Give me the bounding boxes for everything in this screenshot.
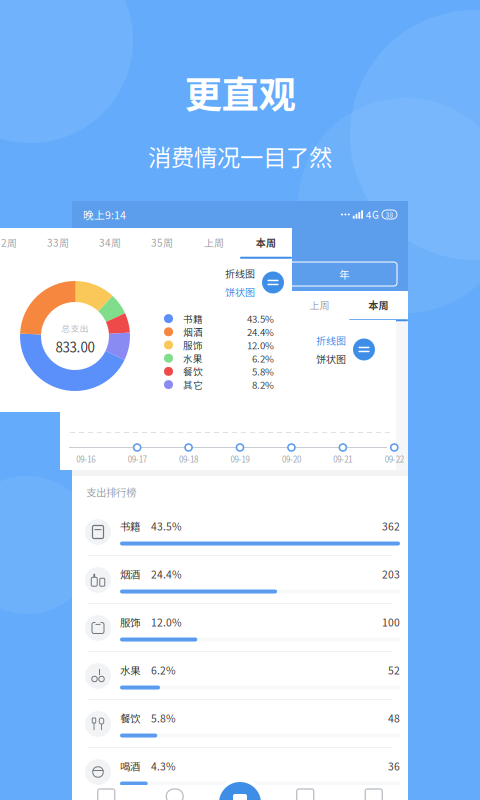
- staticText: 12.0%: [151, 614, 182, 630]
- staticText: 43.5%: [151, 518, 182, 534]
- staticText: 09-22: [385, 453, 404, 465]
- staticText: 烟酒: [183, 325, 203, 339]
- button[interactable]: 喝酒: [72, 748, 408, 796]
- staticText: 更直观: [184, 65, 295, 119]
- staticText: 203: [382, 566, 400, 582]
- staticText: 折线图: [316, 333, 346, 347]
- staticText: 总支出: [61, 322, 88, 334]
- staticText: 33周: [47, 235, 69, 250]
- staticText: 年: [339, 266, 350, 282]
- button[interactable]: 烟酒: [72, 556, 408, 604]
- staticText: 水果: [120, 662, 140, 678]
- staticText: 5.8%: [252, 364, 274, 378]
- staticText: 100: [382, 614, 400, 630]
- staticText: 52: [388, 662, 400, 678]
- button[interactable]: 月: [188, 262, 292, 286]
- button[interactable]: 周: [83, 262, 188, 286]
- button[interactable]: 上周: [188, 228, 240, 258]
- staticText: 书籍: [120, 518, 140, 534]
- staticText: 饼状图: [225, 284, 255, 299]
- staticText: 48: [388, 710, 400, 726]
- staticText: 09-21: [333, 453, 352, 465]
- staticText: 12.0%: [247, 338, 274, 352]
- staticText: 书籍: [183, 312, 203, 325]
- staticText: 833.00: [55, 337, 94, 356]
- staticText: 本周: [256, 235, 276, 250]
- staticText: 烟酒: [120, 566, 140, 582]
- staticText: 24.4%: [247, 325, 274, 339]
- staticText: 其它: [183, 378, 203, 391]
- staticText: 餐饮: [120, 710, 140, 726]
- button[interactable]: 图表: [140, 789, 209, 800]
- staticText: 折线图: [225, 266, 255, 280]
- button[interactable]: 记一笔: [215, 778, 265, 800]
- staticText: 09-19: [230, 453, 249, 465]
- staticText: 喝酒: [120, 758, 140, 774]
- button[interactable]: 服饰: [72, 604, 408, 652]
- button[interactable]: 本周: [349, 291, 408, 320]
- button[interactable]: 本周: [240, 228, 292, 258]
- staticText: 6.2%: [252, 351, 274, 365]
- staticText: 晚上9:14: [83, 207, 126, 222]
- staticText: 上周: [309, 298, 329, 312]
- staticText: 43.5%: [247, 312, 274, 325]
- staticText: 24.4%: [151, 566, 182, 582]
- staticText: 餐饮: [183, 364, 203, 378]
- button[interactable]: 34周: [84, 228, 136, 258]
- staticText: 09-16: [76, 453, 95, 465]
- staticText: 35周: [151, 235, 173, 250]
- staticText: 362: [382, 518, 400, 534]
- button[interactable]: 我的: [339, 789, 408, 800]
- staticText: 水果: [183, 351, 203, 365]
- button[interactable]: 餐饮: [72, 700, 408, 748]
- staticText: 36: [388, 758, 400, 774]
- staticText: 消费情况一目了然: [148, 139, 332, 173]
- button[interactable]: 书籍: [72, 508, 408, 556]
- staticText: 上周: [204, 235, 224, 250]
- staticText: 饼状图: [316, 351, 346, 366]
- staticText: 32周: [0, 235, 17, 250]
- staticText: 5.8%: [151, 710, 176, 726]
- staticText: 8.2%: [252, 378, 274, 391]
- button[interactable]: 年: [292, 262, 397, 286]
- button[interactable]: 预算: [271, 789, 339, 800]
- staticText: 38: [385, 210, 393, 219]
- staticText: 本周: [368, 298, 388, 312]
- staticText: 34周: [99, 235, 121, 250]
- staticText: 4.3%: [151, 758, 176, 774]
- staticText: 支出排行榜: [86, 484, 136, 500]
- button[interactable]: 32周: [0, 228, 32, 258]
- button[interactable]: 上周: [290, 291, 349, 320]
- button[interactable]: 水果: [72, 652, 408, 700]
- staticText: 09-17: [128, 453, 147, 465]
- button[interactable]: 35周: [136, 228, 188, 258]
- staticText: 6.2%: [151, 662, 176, 678]
- staticText: 服饰: [120, 614, 140, 630]
- staticText: 09-18: [179, 453, 198, 465]
- staticText: 服饰: [183, 338, 203, 352]
- staticText: 09-20: [282, 453, 301, 465]
- button[interactable]: 33周: [32, 228, 84, 258]
- staticText: 4G: [366, 207, 379, 222]
- button[interactable]: 明细: [72, 789, 140, 800]
- staticText: 月: [234, 266, 245, 282]
